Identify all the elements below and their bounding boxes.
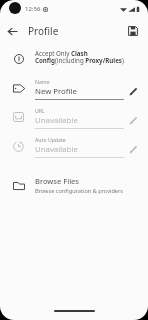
staticText: Auto Update [35, 136, 66, 143]
button[interactable]: Back [0, 19, 24, 43]
button[interactable]: Accept Only Clash Config(including Proxy… [0, 44, 148, 73]
staticText: Profile [28, 24, 59, 38]
staticText: Unavailable [35, 144, 78, 155]
button[interactable]: Name [0, 78, 148, 100]
button[interactable]: Save [121, 19, 145, 43]
button[interactable]: Edit URL [124, 111, 142, 129]
button[interactable]: Auto Update [0, 136, 148, 158]
staticText: Name [35, 78, 50, 85]
button[interactable]: URL [0, 107, 148, 129]
button[interactable]: Edit Auto Update [124, 140, 142, 158]
staticText: 12:56 [25, 5, 41, 13]
staticText: Accept Only Clash Config(including Proxy… [35, 49, 138, 65]
staticText: New Profile [35, 86, 77, 97]
staticText: URL [35, 107, 45, 114]
button[interactable]: Edit Name [124, 82, 142, 100]
button[interactable]: Browse Files [0, 171, 148, 199]
staticText: Browse Files [35, 176, 80, 186]
staticText: Unavailable [35, 115, 78, 126]
staticText: Browse configuration & providers [35, 187, 124, 195]
